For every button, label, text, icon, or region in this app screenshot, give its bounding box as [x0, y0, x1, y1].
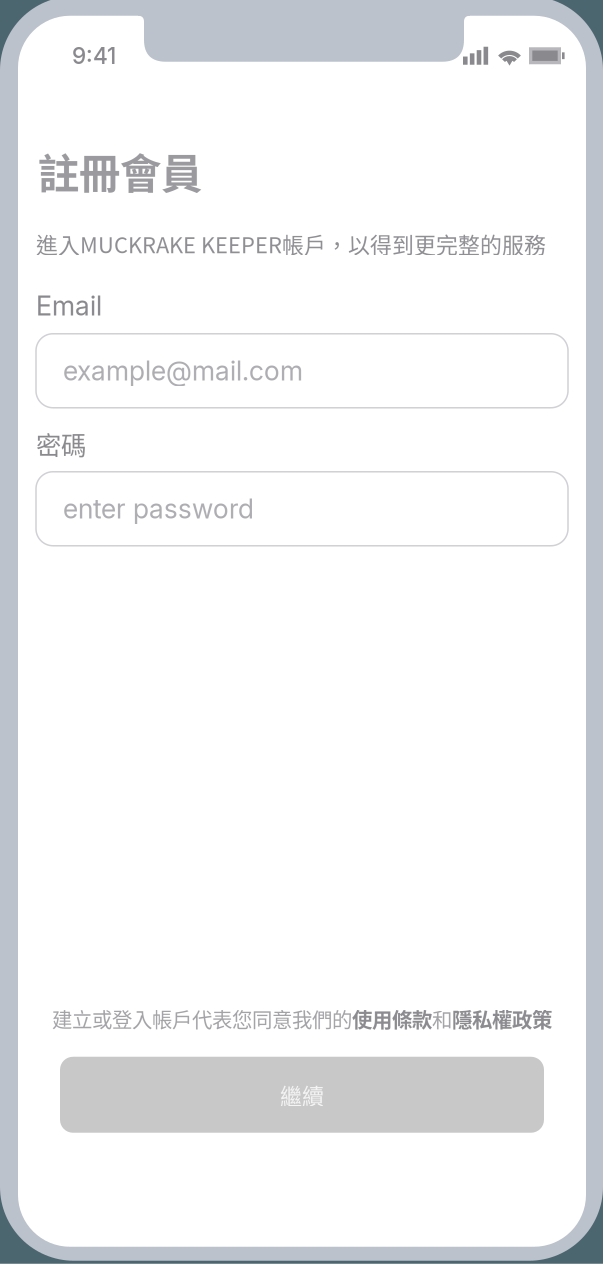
staticText: 註冊會員 — [38, 141, 202, 201]
button[interactable]: 繼續 — [60, 1057, 544, 1133]
button[interactable]: Password — [36, 472, 568, 546]
staticText: 隱私權政策 — [452, 1004, 552, 1033]
staticText: 繼續 — [280, 1079, 324, 1111]
staticText: 使用條款 — [352, 1004, 432, 1033]
button[interactable]: 隱私權政策 — [452, 1004, 552, 1033]
staticText: 建立或登入帳戶代表您同意我們的 — [52, 1004, 352, 1033]
button[interactable]: 使用條款 — [352, 1004, 432, 1033]
staticText: 密碼 — [36, 425, 86, 462]
staticText: 進入MUCKRAKE KEEPER帳戶，以得到更完整的服務 — [36, 228, 546, 260]
staticText: enter password — [63, 493, 254, 525]
staticText: example@mail.com — [63, 355, 303, 387]
staticText: Email — [36, 290, 102, 322]
button[interactable]: Email — [36, 334, 568, 408]
staticText: 和 — [432, 1004, 452, 1033]
staticText: 9:41 — [72, 42, 116, 69]
